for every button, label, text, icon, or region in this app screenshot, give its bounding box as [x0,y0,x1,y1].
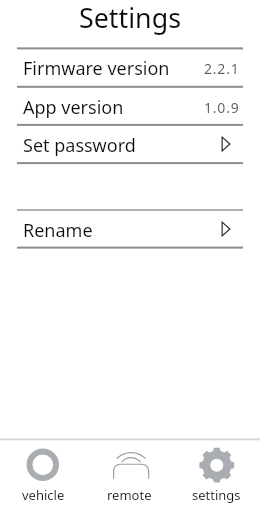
button[interactable]: settings [173,441,260,512]
staticText: Firmware version [23,56,204,81]
staticText: Settings [79,0,181,36]
staticText: Rename [23,218,217,243]
button[interactable]: remote [86,441,173,512]
staticText: Set password [23,133,217,158]
staticText: remote [107,486,152,504]
staticText: vehicle [22,486,65,504]
button[interactable]: Rename [17,210,243,248]
staticText: 2.2.1 [204,59,240,78]
button[interactable]: App version [17,87,243,125]
button[interactable]: Firmware version [17,48,243,86]
button[interactable]: Set password [17,125,243,163]
staticText: App version [23,95,204,120]
button[interactable]: vehicle [0,441,86,512]
staticText: 1.0.9 [204,98,240,117]
staticText: settings [192,486,241,504]
